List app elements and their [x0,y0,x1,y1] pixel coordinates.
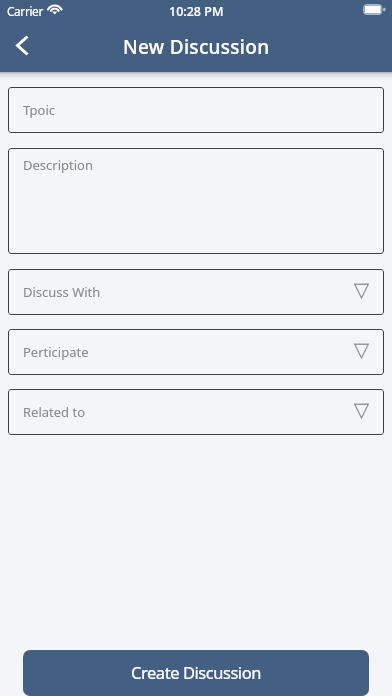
staticText: Perticipate [23,343,89,361]
staticText: 10:28 PM [169,3,224,20]
staticText: Carrier [7,3,43,19]
button[interactable]: Perticipate [8,329,384,375]
button[interactable]: Back [0,26,42,68]
staticText: Related to [23,403,86,421]
staticText: Discuss With [23,283,101,301]
button[interactable]: Related to [8,389,384,435]
button[interactable]: Create Discussion [23,650,369,696]
staticText: Tpoic [23,101,56,119]
staticText: Description [23,156,93,174]
staticText: Create Discussion [131,661,261,683]
button[interactable]: Description [8,148,384,254]
button[interactable]: Tpoic [8,87,384,133]
button[interactable]: Discuss With [8,269,384,315]
staticText: New Discussion [123,34,270,60]
